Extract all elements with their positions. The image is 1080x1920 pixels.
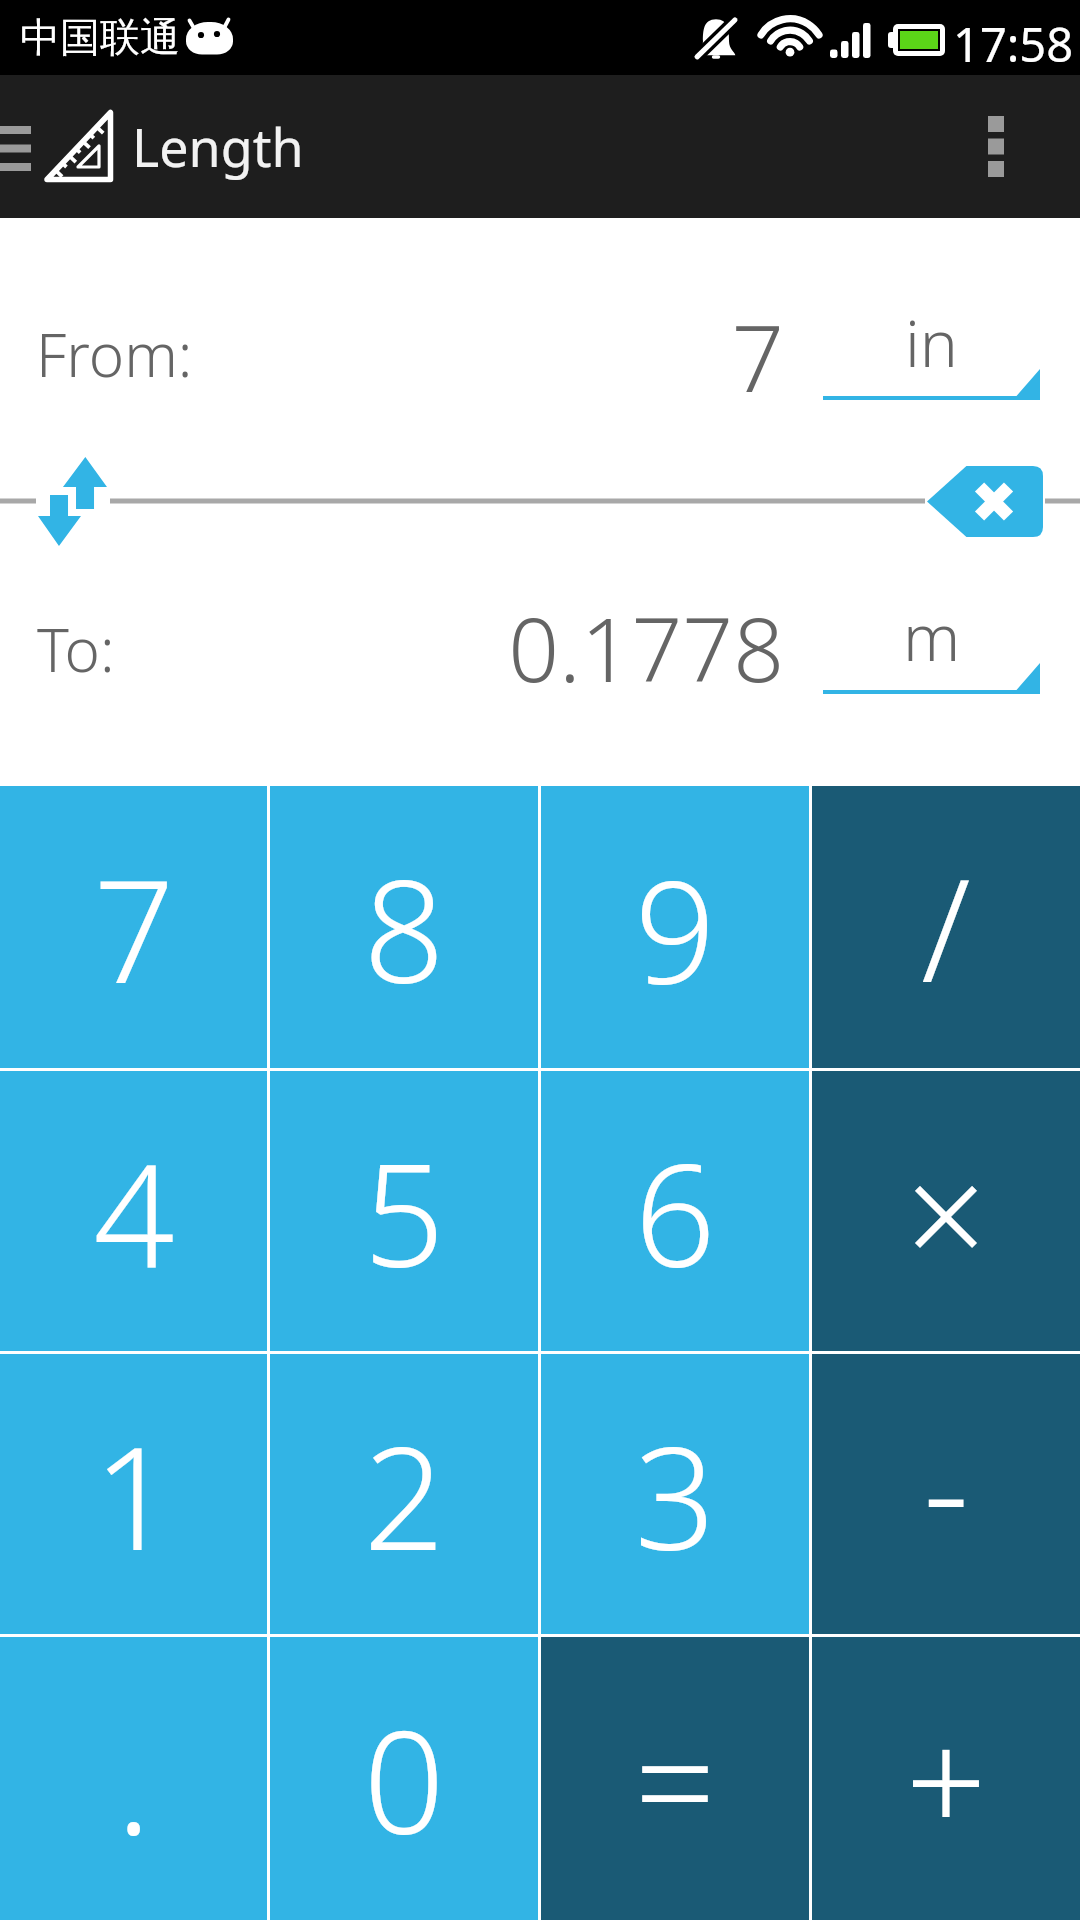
staticText: From: (36, 313, 193, 395)
button[interactable]: 0 (270, 1637, 538, 1920)
staticText: 9 (634, 831, 716, 1024)
staticText: + (905, 1682, 987, 1875)
staticText: 8 (363, 831, 445, 1024)
staticText: 4 (93, 1115, 175, 1308)
button[interactable]: Unit m, change unit (823, 602, 1040, 694)
button[interactable]: 5 (270, 1071, 538, 1351)
button[interactable]: = (541, 1637, 809, 1920)
button[interactable]: Swap units (24, 447, 121, 555)
staticText: - (923, 1390, 969, 1583)
staticText: 7 (731, 294, 784, 404)
button[interactable]: 2 (270, 1354, 538, 1634)
staticText: m (903, 593, 961, 680)
button[interactable]: 4 (0, 1071, 267, 1351)
staticText: / (921, 830, 971, 1023)
staticText: 1 (93, 1398, 175, 1591)
staticText: = (634, 1682, 716, 1875)
staticText: 7 (93, 831, 175, 1024)
button[interactable]: 0.1778 (421, 586, 781, 696)
staticText: Length (132, 111, 304, 182)
button[interactable]: × (812, 1071, 1080, 1351)
button[interactable]: - (812, 1354, 1080, 1634)
staticText: 5 (363, 1115, 445, 1308)
staticText: To: (37, 608, 115, 690)
staticText: 0.1778 (508, 587, 784, 697)
staticText: 2 (363, 1398, 445, 1591)
staticText: 0 (363, 1682, 445, 1875)
button[interactable]: 7 (0, 786, 267, 1068)
button[interactable]: Open navigation drawer (0, 75, 40, 218)
staticText: × (905, 1115, 987, 1308)
button[interactable]: 8 (270, 786, 538, 1068)
button[interactable]: 1 (0, 1354, 267, 1634)
button[interactable]: Length category (40, 105, 120, 185)
staticText: . (116, 1682, 151, 1875)
button[interactable]: More options (960, 75, 1080, 218)
button[interactable]: Unit in, change unit (823, 308, 1040, 400)
button[interactable]: Delete (917, 456, 1053, 547)
button[interactable]: 9 (541, 786, 809, 1068)
button[interactable]: 6 (541, 1071, 809, 1351)
staticText: 6 (634, 1115, 716, 1308)
button[interactable]: / (812, 786, 1080, 1068)
button[interactable]: . (0, 1637, 267, 1920)
staticText: 17:58 (953, 12, 1074, 76)
staticText: 中国联通 (20, 12, 180, 62)
button[interactable]: 3 (541, 1354, 809, 1634)
button[interactable]: 7 (604, 294, 784, 404)
staticText: 3 (634, 1398, 716, 1591)
button[interactable]: + (812, 1637, 1080, 1920)
staticText: in (905, 299, 958, 386)
